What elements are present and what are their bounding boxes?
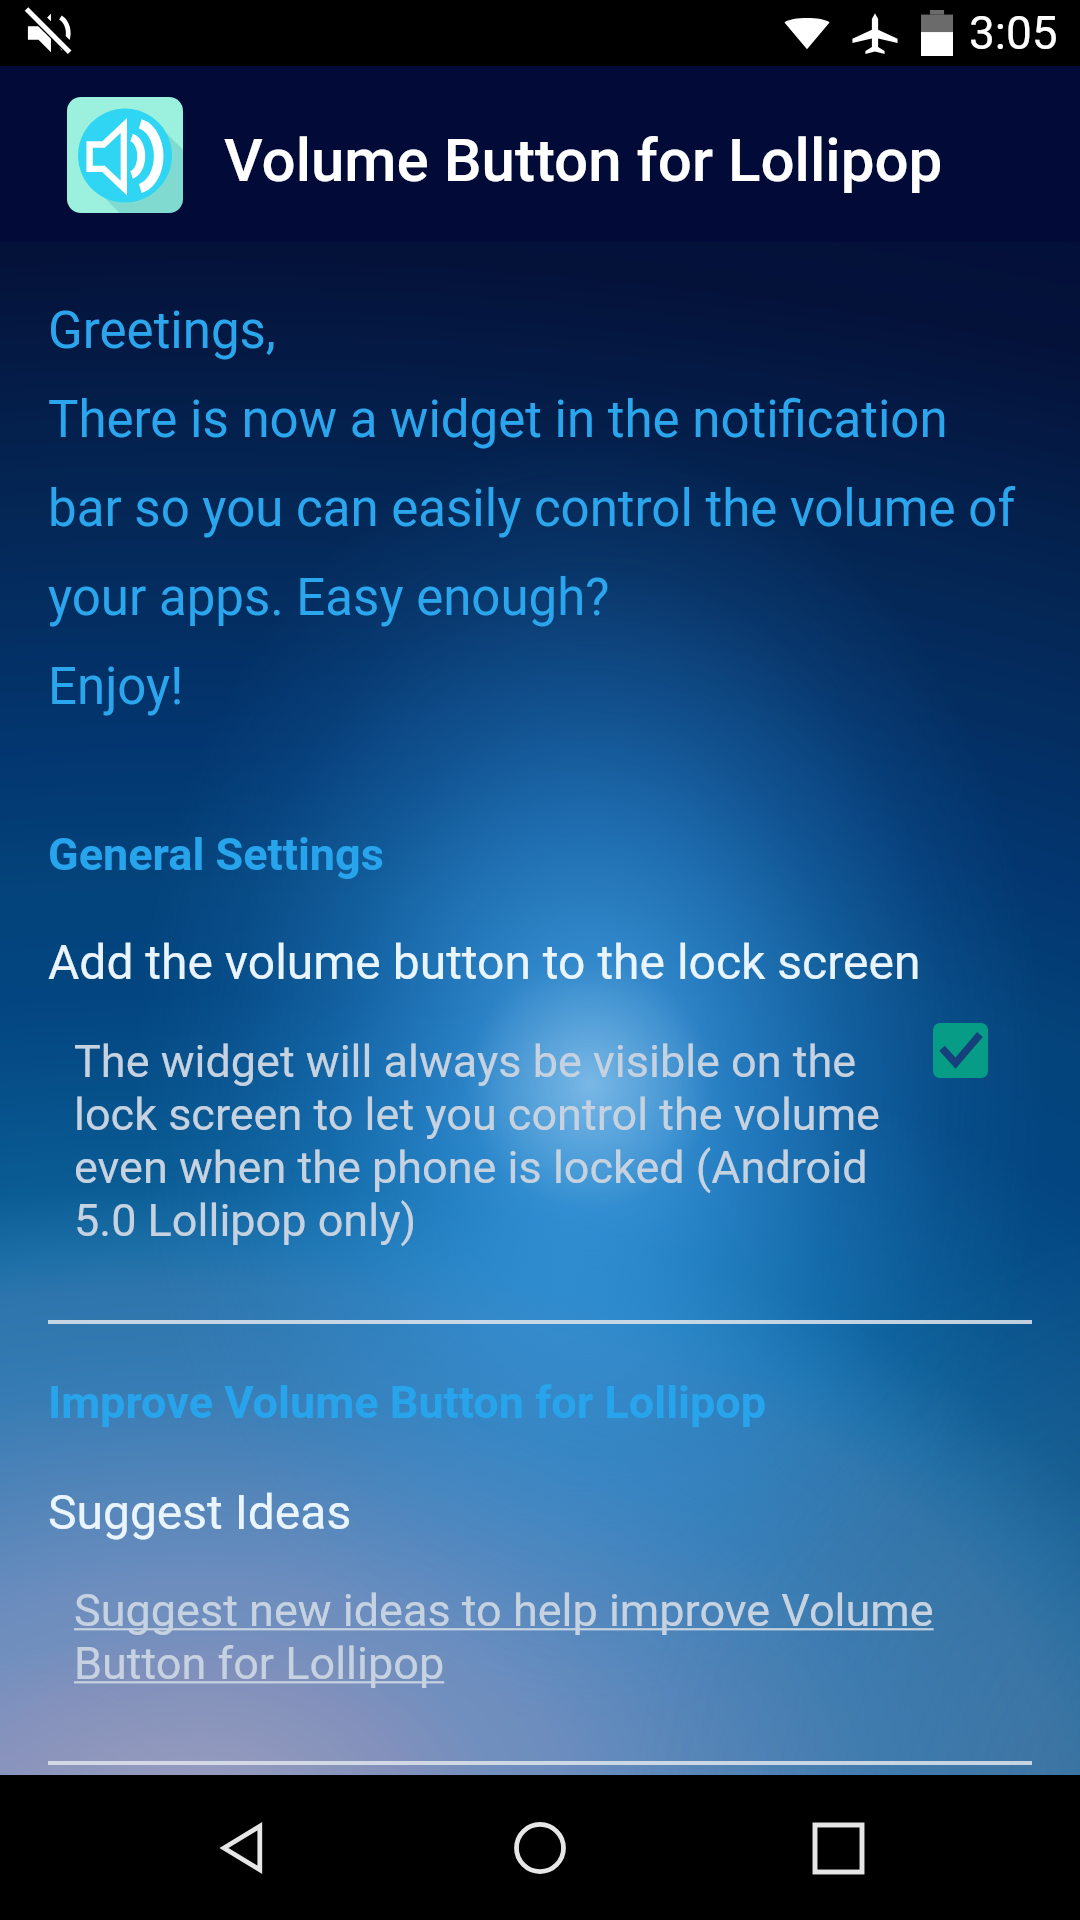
- button[interactable]: Show volume button on the lock screen, e…: [933, 1023, 988, 1078]
- button[interactable]: Back: [188, 1793, 298, 1903]
- staticText: Add the volume button to the lock screen: [48, 934, 921, 990]
- button[interactable]: Home: [485, 1793, 595, 1903]
- staticText: 3:05: [969, 6, 1058, 60]
- staticText: Suggest Ideas: [48, 1484, 352, 1540]
- staticText: General Settings: [48, 828, 384, 881]
- button[interactable]: Suggest Ideas: [0, 1462, 1080, 1692]
- staticText: Greetings, There is now a widget in the …: [48, 301, 1023, 717]
- staticText: Suggest new ideas to help improve Volume…: [74, 1584, 964, 1690]
- staticText: Volume Button for Lollipop: [224, 125, 943, 195]
- button[interactable]: Recents: [783, 1793, 893, 1903]
- staticText: Improve Volume Button for Lollipop: [48, 1376, 767, 1429]
- button[interactable]: Add the volume button to the lock screen: [0, 912, 1080, 1282]
- staticText: The widget will always be visible on the…: [74, 1035, 894, 1247]
